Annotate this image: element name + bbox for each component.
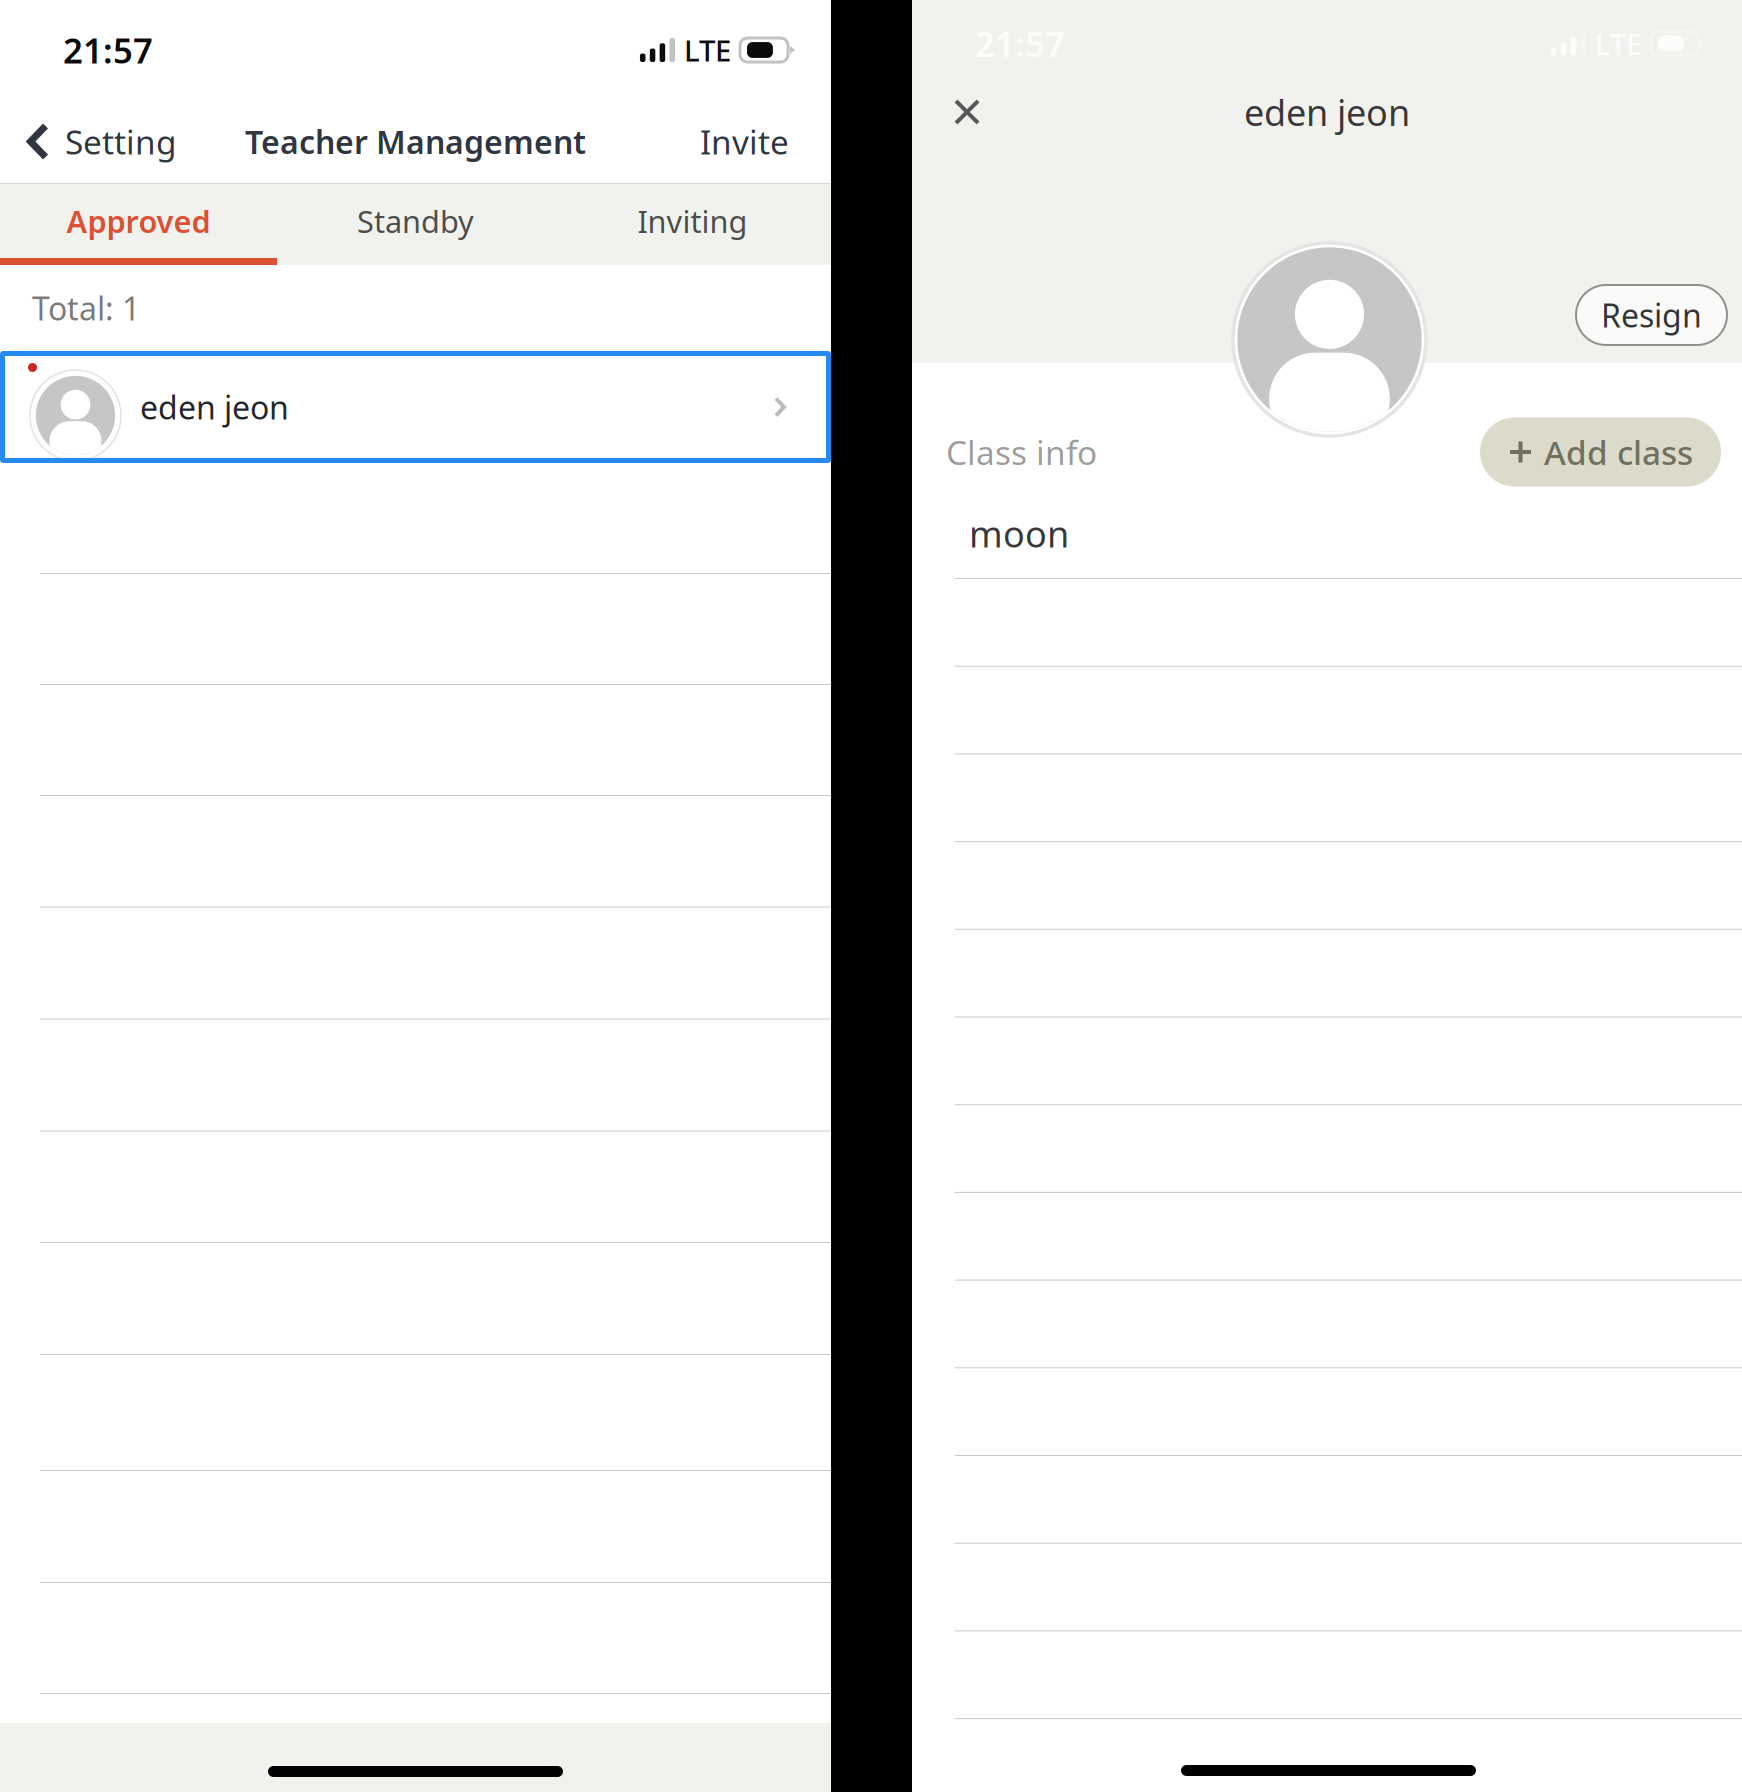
staticText: LTE [1595,24,1642,63]
staticText: Setting [65,119,177,164]
staticText: moon [969,510,1069,557]
staticText: Resign [1601,294,1702,336]
staticText: eden jeon [1244,88,1410,136]
staticText: Total: 1 [32,287,140,329]
staticText: Inviting [637,201,747,241]
staticText: Invite [700,119,789,164]
staticText: Class info [946,430,1097,474]
staticText: 21:57 [63,27,153,73]
staticText: Approved [66,201,210,241]
button[interactable]: Approved [0,184,277,258]
button[interactable]: Invite [631,100,831,183]
button[interactable]: Standby [277,184,554,258]
button[interactable]: Inviting [554,184,831,258]
staticText: Add class [1544,430,1693,474]
button[interactable]: Resign [1576,285,1727,345]
staticText: Standby [357,201,474,241]
staticText: 21:57 [975,20,1065,66]
button[interactable]: eden jeon [0,351,831,463]
staticText: LTE [684,30,731,69]
button[interactable]: Close [912,87,1006,137]
staticText: eden jeon [140,386,289,428]
button[interactable]: Setting [0,100,200,183]
button[interactable]: Add class [1480,417,1721,486]
staticText: Teacher Management [245,120,586,163]
